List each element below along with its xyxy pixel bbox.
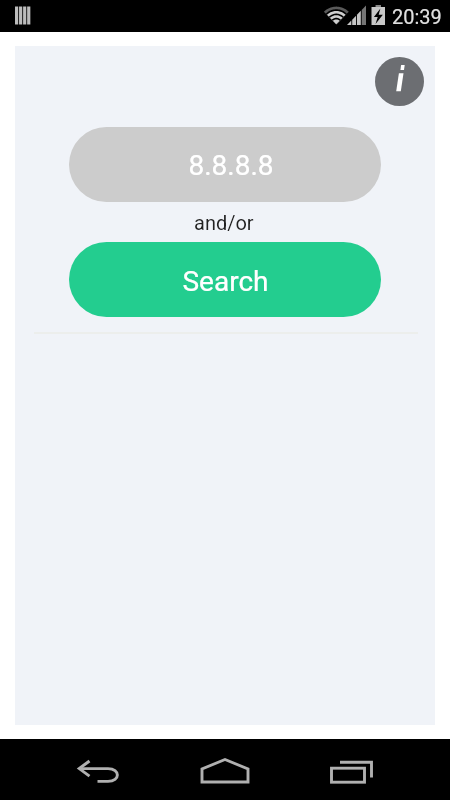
button[interactable]: Info: [375, 57, 424, 106]
staticText: and/or: [194, 211, 254, 234]
staticText: 8.8.8.8: [188, 149, 274, 182]
staticText: 20:39: [392, 5, 442, 28]
button[interactable]: 8.8.8.8: [69, 127, 381, 202]
button[interactable]: Home: [187, 739, 263, 800]
button[interactable]: Recents: [313, 739, 389, 800]
staticText: Search: [182, 265, 269, 298]
button[interactable]: Back: [62, 739, 138, 800]
button[interactable]: Search: [69, 242, 381, 317]
